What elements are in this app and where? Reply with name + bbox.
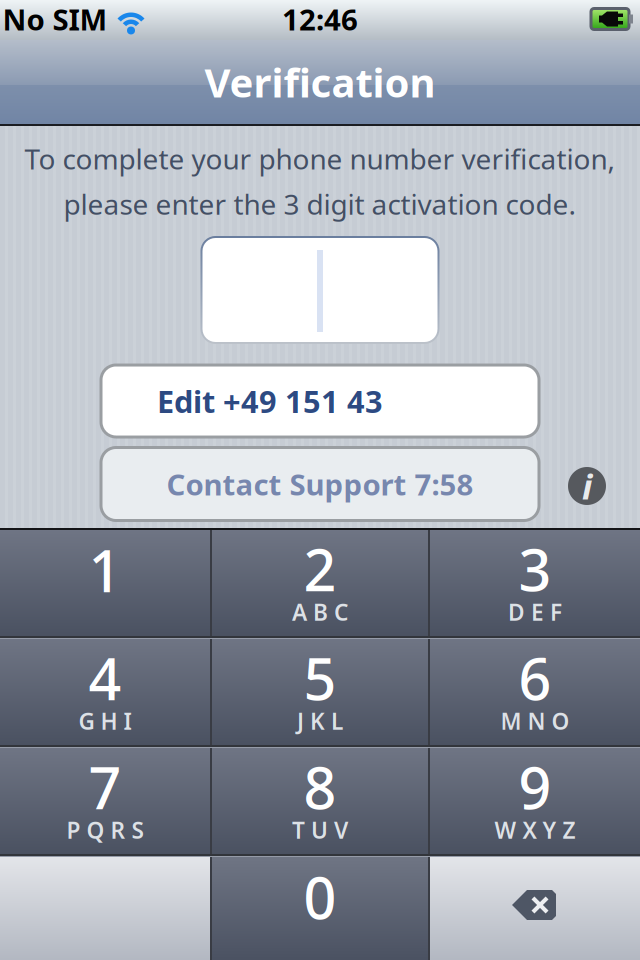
staticText: A B C: [292, 597, 348, 627]
button[interactable]: 7: [0, 748, 210, 854]
staticText: 2: [303, 531, 336, 607]
staticText: P Q R S: [66, 815, 143, 845]
staticText: 0: [303, 859, 336, 935]
staticText: 7: [88, 749, 121, 825]
staticText: J K L: [297, 706, 343, 736]
staticText: 12:46: [282, 0, 358, 38]
staticText: No SIM: [2, 0, 107, 38]
button[interactable]: 3: [430, 530, 640, 636]
staticText: Contact Support 7:58: [166, 464, 473, 503]
staticText: M N O: [500, 706, 569, 736]
button[interactable]: Info: [568, 467, 606, 505]
staticText: 3: [518, 531, 551, 607]
staticText: To complete your phone number verificati…: [24, 140, 615, 177]
button[interactable]: 1: [0, 530, 210, 636]
staticText: G H I: [78, 706, 131, 736]
button[interactable]: Edit +49 151 43: [101, 365, 539, 437]
staticText: W X Y Z: [494, 815, 575, 845]
staticText: Edit +49 151 43: [157, 381, 383, 421]
staticText: 4: [88, 640, 121, 716]
staticText: 8: [303, 749, 336, 825]
staticText: 5: [303, 640, 336, 716]
button[interactable]: 2: [212, 530, 428, 636]
button[interactable]: 9: [430, 748, 640, 854]
button[interactable]: 4: [0, 639, 210, 745]
staticText: 1: [88, 532, 121, 608]
button[interactable]: 8: [212, 748, 428, 854]
staticText: 6: [518, 640, 551, 716]
staticText: D E F: [508, 597, 562, 627]
button[interactable]: 6: [430, 639, 640, 745]
staticText: please enter the 3 digit activation code…: [63, 185, 576, 222]
button[interactable]: Contact Support 7:58: [101, 447, 539, 520]
staticText: i: [582, 463, 592, 509]
staticText: 9: [518, 749, 551, 825]
button[interactable]: 0: [212, 857, 428, 960]
staticText: Verification: [204, 55, 435, 108]
staticText: T U V: [292, 815, 348, 845]
button[interactable]: Delete: [430, 857, 640, 960]
button[interactable]: 5: [212, 639, 428, 745]
